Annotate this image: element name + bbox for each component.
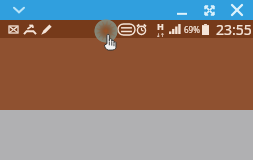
- staticText: 23:55: [216, 20, 252, 38]
- button[interactable]: Close: [227, 0, 247, 20]
- button[interactable]: Collapse: [8, 0, 30, 20]
- staticText: 69%: [184, 24, 200, 35]
- button[interactable]: Minimize: [172, 0, 192, 20]
- staticText: H: [157, 20, 164, 32]
- button[interactable]: Fullscreen: [199, 0, 219, 20]
- staticText: ↓↑: [156, 32, 165, 38]
